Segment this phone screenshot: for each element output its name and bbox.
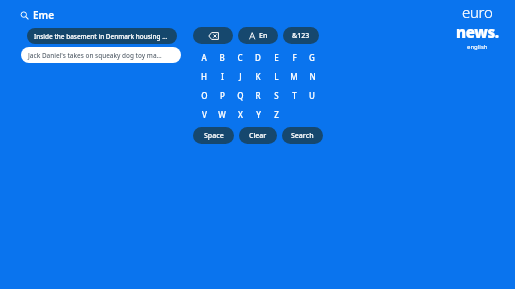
staticText: G	[309, 52, 315, 63]
staticText: S	[274, 90, 279, 101]
button[interactable]: R	[249, 87, 267, 104]
button[interactable]: B	[213, 49, 231, 66]
staticText: H	[201, 71, 207, 82]
button[interactable]: Change language, English	[238, 27, 278, 44]
staticText: Eme	[33, 8, 55, 22]
staticText: euro	[462, 2, 493, 22]
staticText: N	[309, 71, 316, 82]
button[interactable]: W	[213, 106, 231, 123]
button[interactable]: S	[267, 87, 285, 104]
button[interactable]: L	[267, 68, 285, 85]
staticText: D	[255, 52, 261, 63]
staticText: Search	[291, 131, 314, 141]
button[interactable]: Q	[231, 87, 249, 104]
button[interactable]: K	[249, 68, 267, 85]
staticText: O	[201, 90, 208, 101]
button[interactable]: P	[213, 87, 231, 104]
staticText: Z	[274, 109, 279, 120]
button[interactable]: D	[249, 49, 267, 66]
staticText: Y	[256, 109, 261, 120]
staticText: J	[239, 71, 242, 82]
staticText: Space	[204, 131, 224, 141]
button[interactable]: M	[285, 68, 303, 85]
button[interactable]: H	[195, 68, 213, 85]
button[interactable]: J	[231, 68, 249, 85]
staticText: Q	[237, 90, 244, 101]
button[interactable]: O	[195, 87, 213, 104]
staticText: Inside the basement in Denmark housing …	[34, 32, 168, 41]
staticText: I	[221, 71, 224, 82]
button[interactable]: G	[303, 49, 321, 66]
staticText: &123	[292, 31, 310, 41]
button[interactable]: &123	[283, 27, 319, 44]
button[interactable]: Jack Daniel's takes on squeaky dog toy m…	[21, 47, 181, 63]
staticText: R	[255, 90, 261, 101]
staticText: E	[274, 52, 279, 63]
button[interactable]: I	[213, 68, 231, 85]
staticText: Jack Daniel's takes on squeaky dog toy m…	[28, 51, 162, 60]
staticText: T	[292, 90, 297, 101]
button[interactable]: Search	[18, 9, 30, 21]
staticText: K	[255, 71, 261, 82]
button[interactable]: V	[195, 106, 213, 123]
staticText: M	[290, 71, 298, 82]
staticText: V	[202, 109, 207, 120]
staticText: L	[274, 71, 279, 82]
button[interactable]: Z	[267, 106, 285, 123]
button[interactable]: C	[231, 49, 249, 66]
button[interactable]: E	[267, 49, 285, 66]
staticText: news.	[456, 22, 499, 42]
button[interactable]: X	[231, 106, 249, 123]
staticText: En	[259, 31, 268, 41]
staticText: X	[238, 109, 243, 120]
button[interactable]: F	[285, 49, 303, 66]
staticText: F	[292, 52, 297, 63]
staticText: A	[201, 52, 207, 63]
staticText: english	[467, 43, 488, 51]
button[interactable]: Inside the basement in Denmark housing …	[27, 28, 177, 44]
button[interactable]: A	[195, 49, 213, 66]
button[interactable]: U	[303, 87, 321, 104]
button[interactable]: Space	[193, 127, 234, 144]
staticText: B	[219, 52, 225, 63]
button[interactable]: T	[285, 87, 303, 104]
staticText: C	[237, 52, 243, 63]
staticText: U	[309, 90, 315, 101]
button[interactable]: Clear	[239, 127, 277, 144]
button[interactable]: Y	[249, 106, 267, 123]
button[interactable]: Search	[282, 127, 323, 144]
staticText: P	[220, 90, 225, 101]
staticText: Clear	[249, 131, 267, 141]
button[interactable]: N	[303, 68, 321, 85]
button[interactable]: Backspace	[193, 27, 233, 44]
staticText: W	[218, 109, 226, 120]
